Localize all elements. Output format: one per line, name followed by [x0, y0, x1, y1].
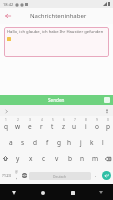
- button[interactable]: h: [64, 133, 75, 150]
- button[interactable]: s: [17, 133, 29, 150]
- staticText: y: [16, 154, 20, 163]
- button[interactable]: n: [76, 150, 89, 167]
- staticText: j: [80, 138, 82, 147]
- staticText: d: [33, 138, 37, 147]
- staticText: 7: [74, 118, 76, 122]
- button[interactable]: 6: [58, 116, 69, 133]
- staticText: 9: [96, 118, 98, 122]
- button[interactable]: 3: [24, 116, 36, 133]
- staticText: l: [102, 138, 104, 147]
- button[interactable]: .: [92, 167, 99, 184]
- button[interactable]: @: [13, 167, 20, 184]
- button[interactable]: a: [5, 133, 17, 150]
- button[interactable]: b: [63, 150, 76, 167]
- staticText: r: [40, 122, 43, 131]
- staticText: 2: [17, 118, 19, 122]
- staticText: 4: [41, 118, 43, 122]
- button[interactable]: Shift: [0, 150, 11, 167]
- staticText: s: [21, 138, 25, 147]
- button[interactable]: 8: [80, 116, 91, 133]
- staticText: b: [68, 154, 72, 163]
- staticText: h: [67, 138, 72, 147]
- button[interactable]: x: [24, 150, 37, 167]
- staticText: z: [62, 122, 66, 131]
- staticText: 1: [5, 118, 7, 122]
- button[interactable]: Recent apps: [67, 187, 78, 198]
- button[interactable]: 7: [69, 116, 80, 133]
- staticText: 3: [29, 118, 31, 122]
- staticText: v: [55, 154, 59, 163]
- staticText: x: [29, 154, 33, 163]
- button[interactable]: Attach: [104, 97, 110, 103]
- staticText: t: [51, 122, 54, 131]
- staticText: 18:42: [3, 2, 14, 7]
- button[interactable]: Backspace: [102, 150, 113, 167]
- staticText: u: [72, 122, 77, 131]
- button[interactable]: 9: [91, 116, 102, 133]
- button[interactable]: ?123: [0, 167, 13, 184]
- button[interactable]: c: [37, 150, 50, 167]
- button[interactable]: v: [50, 150, 63, 167]
- staticText: n: [80, 154, 85, 163]
- button[interactable]: 5: [47, 116, 58, 133]
- button[interactable]: k: [86, 133, 97, 150]
- button[interactable]: Hallo, ich glaube, ich habe Ihr Haustier…: [4, 27, 109, 57]
- button[interactable]: 1: [0, 116, 12, 133]
- staticText: w: [15, 122, 21, 131]
- button[interactable]: Back: [8, 187, 19, 198]
- staticText: Nachrichteninhaber: [30, 12, 87, 20]
- staticText: a: [9, 138, 13, 147]
- button[interactable]: l: [97, 133, 108, 150]
- button[interactable]: 4: [36, 116, 47, 133]
- staticText: 0: [107, 118, 109, 122]
- staticText: k: [90, 138, 94, 147]
- button[interactable]: Back: [2, 10, 14, 22]
- staticText: 6: [63, 118, 65, 122]
- staticText: ,: [16, 174, 18, 181]
- button[interactable]: Senden: [0, 95, 113, 105]
- button[interactable]: Voice input: [103, 107, 111, 115]
- staticText: ?123: [2, 173, 12, 179]
- button[interactable]: 2: [12, 116, 24, 133]
- staticText: c: [42, 154, 46, 163]
- button[interactable]: 0: [102, 116, 113, 133]
- staticText: i: [85, 122, 87, 131]
- staticText: Deutsch: [53, 174, 67, 179]
- button[interactable]: m: [89, 150, 102, 167]
- button[interactable]: More suggestions: [2, 107, 10, 115]
- staticText: q: [4, 122, 8, 131]
- staticText: o: [95, 122, 99, 131]
- staticText: @: [15, 170, 18, 174]
- button[interactable]: y: [11, 150, 24, 167]
- staticText: m: [92, 154, 99, 163]
- staticText: .: [95, 172, 97, 179]
- button[interactable]: g: [53, 133, 64, 150]
- button[interactable]: j: [75, 133, 86, 150]
- staticText: 5: [52, 118, 54, 122]
- button[interactable]: d: [29, 133, 41, 150]
- staticText: Senden: [48, 97, 65, 103]
- button[interactable]: Change language: [20, 167, 28, 184]
- staticText: g: [57, 138, 61, 147]
- button[interactable]: f: [41, 133, 53, 150]
- staticText: 8: [85, 118, 87, 122]
- button[interactable]: Hide keyboard: [96, 188, 105, 197]
- staticText: e: [28, 122, 32, 131]
- button[interactable]: Enter: [99, 167, 113, 184]
- staticText: p: [106, 122, 110, 131]
- staticText: Hallo, ich glaube, ich habe Ihr Haustier…: [7, 29, 104, 35]
- staticText: f: [46, 138, 49, 147]
- button[interactable]: Space: [29, 172, 91, 180]
- button[interactable]: Home: [37, 187, 48, 198]
